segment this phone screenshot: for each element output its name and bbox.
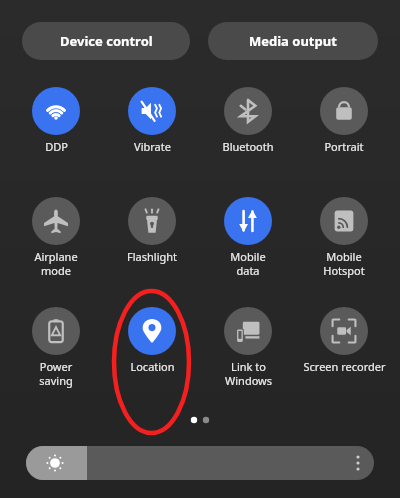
button[interactable]: Portrait [296,87,392,163]
staticText: Airplane mode [34,249,78,278]
button[interactable]: Vibrate [104,87,200,163]
button[interactable]: Location [104,307,200,383]
staticText: Mobile Hotspot [323,249,365,278]
staticText: Device control [60,32,153,50]
button[interactable]: Link to Windows [200,307,296,383]
button[interactable]: Flashlight [104,197,200,273]
button[interactable]: Screen recorder [296,307,392,383]
staticText: Link to Windows [225,359,272,388]
button[interactable]: DDP [8,87,104,163]
staticText: Power saving [39,359,73,388]
staticText: Media output [249,32,337,50]
staticText: Portrait [324,139,364,154]
button[interactable]: Bluetooth [200,87,296,163]
button[interactable]: Device control [22,22,190,60]
staticText: Screen recorder [303,359,386,374]
staticText: Flashlight [127,249,177,264]
staticText: DDP [45,139,68,154]
staticText: Vibrate [134,139,171,154]
button[interactable]: Brightness [26,446,374,480]
button[interactable]: Media output [208,22,378,60]
staticText: Location [130,359,175,374]
button[interactable]: Mobile data [200,197,296,273]
button[interactable]: Airplane mode [8,197,104,273]
staticText: Bluetooth [222,139,274,154]
staticText: Mobile data [230,249,266,278]
button[interactable]: Mobile Hotspot [296,197,392,273]
button[interactable]: Power saving [8,307,104,383]
